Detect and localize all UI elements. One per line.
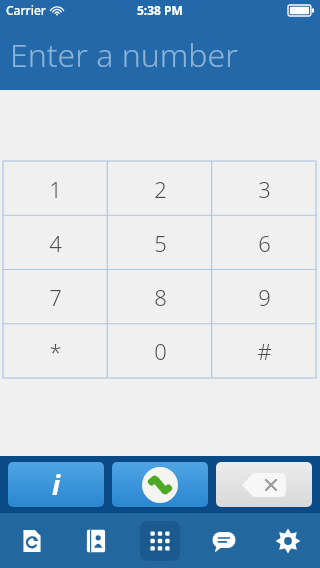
- staticText: 8: [154, 282, 167, 312]
- staticText: 7: [49, 282, 62, 312]
- button[interactable]: *: [3, 324, 108, 378]
- staticText: 9: [258, 282, 271, 312]
- staticText: i: [52, 466, 61, 503]
- staticText: *: [49, 336, 62, 366]
- button[interactable]: Contacts: [64, 513, 128, 568]
- button[interactable]: 6: [212, 216, 316, 270]
- button[interactable]: 2: [108, 161, 212, 216]
- button[interactable]: Messages: [192, 513, 256, 568]
- button[interactable]: Delete: [216, 462, 312, 507]
- staticText: 5: [154, 228, 167, 258]
- staticText: 3: [258, 174, 271, 204]
- button[interactable]: Call: [112, 462, 208, 507]
- button[interactable]: 8: [108, 270, 212, 324]
- staticText: 6: [258, 228, 271, 258]
- button[interactable]: Keypad: [128, 513, 192, 568]
- button[interactable]: 7: [3, 270, 108, 324]
- button[interactable]: 0: [108, 324, 212, 378]
- button[interactable]: Settings: [256, 513, 320, 568]
- button[interactable]: Recents: [0, 513, 64, 568]
- staticText: Carrier: [6, 2, 46, 18]
- staticText: Enter a number: [10, 33, 238, 77]
- staticText: 5:38 PM: [137, 2, 183, 18]
- staticText: #: [257, 336, 272, 366]
- button[interactable]: 1: [3, 161, 108, 216]
- button[interactable]: 5: [108, 216, 212, 270]
- staticText: 4: [49, 228, 62, 258]
- button[interactable]: #: [212, 324, 316, 378]
- staticText: 2: [154, 174, 167, 204]
- button[interactable]: 3: [212, 161, 316, 216]
- button[interactable]: Info: [8, 462, 104, 507]
- button[interactable]: 4: [3, 216, 108, 270]
- button[interactable]: 9: [212, 270, 316, 324]
- staticText: 1: [49, 174, 62, 204]
- staticText: 0: [154, 336, 167, 366]
